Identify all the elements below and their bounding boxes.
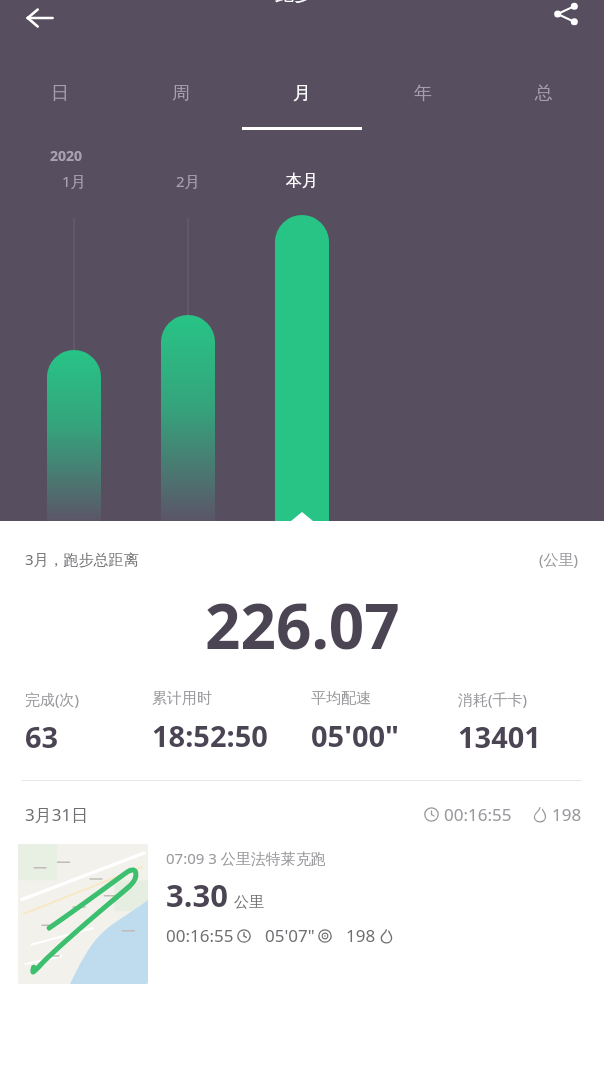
staticText: 周 <box>172 82 190 105</box>
staticText: (公里) <box>539 549 579 569</box>
staticText: 00:16:55 <box>444 803 512 826</box>
staticText: 平均配速 <box>311 689 371 708</box>
button[interactable]: 总 <box>483 68 604 132</box>
button[interactable]: 07:09 3 公里法特莱克跑 <box>18 844 604 984</box>
staticText: 月 <box>293 82 311 105</box>
staticText: 05'07" <box>265 924 315 947</box>
staticText: 00:16:55 <box>166 924 234 947</box>
staticText: 198 <box>346 924 376 947</box>
staticText: 2月 <box>176 171 200 191</box>
button[interactable]: 月 <box>241 68 362 132</box>
staticText: 日 <box>51 82 69 105</box>
staticText: 63 <box>25 717 59 756</box>
staticText: 累计用时 <box>152 689 212 708</box>
staticText: 3月31日 <box>25 803 89 826</box>
button[interactable]: Back <box>8 0 72 50</box>
button[interactable]: 年 <box>362 68 483 132</box>
staticText: 18:52:50 <box>152 716 268 755</box>
staticText: 1月 <box>62 171 86 191</box>
staticText: 3月，跑步总距离 <box>25 549 139 569</box>
staticText: 跑步 <box>275 0 313 6</box>
staticText: 05'00" <box>311 716 399 755</box>
staticText: 226.07 <box>205 583 400 667</box>
staticText: 消耗(千卡) <box>458 689 528 709</box>
staticText: 年 <box>414 82 432 105</box>
staticText: 198 <box>552 803 582 826</box>
staticText: 公里 <box>234 893 264 912</box>
staticText: 总 <box>535 82 553 105</box>
staticText: 3.30 <box>166 874 228 916</box>
button[interactable]: 跑步 <box>275 0 329 6</box>
staticText: 13401 <box>458 717 541 756</box>
button[interactable]: Share <box>536 0 596 44</box>
staticText: 2020 <box>50 146 83 165</box>
button[interactable]: 周 <box>120 68 241 132</box>
staticText: 本月 <box>286 171 318 191</box>
staticText: 完成(次) <box>25 689 80 709</box>
staticText: 07:09 3 公里法特莱克跑 <box>166 848 326 868</box>
button[interactable]: 日 <box>0 68 120 132</box>
